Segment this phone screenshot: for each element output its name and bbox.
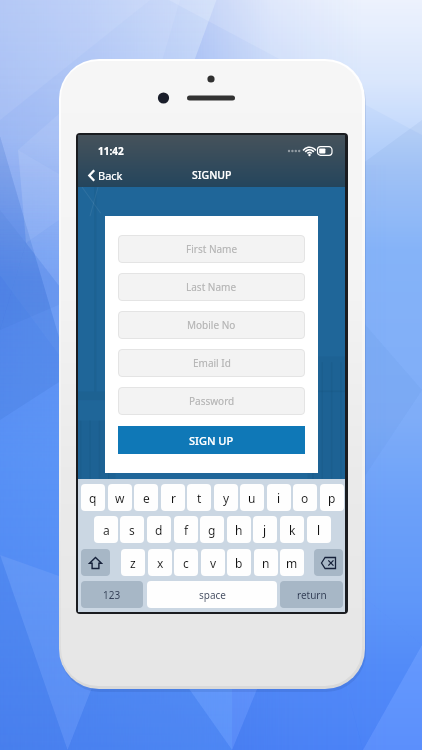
staticText: Back bbox=[98, 168, 123, 183]
button[interactable]: y bbox=[214, 484, 238, 511]
button[interactable]: j bbox=[253, 516, 277, 543]
button[interactable]: k bbox=[280, 516, 304, 543]
button[interactable]: r bbox=[161, 484, 185, 511]
button[interactable]: SIGN UP bbox=[118, 426, 305, 454]
staticText: v bbox=[210, 555, 217, 571]
staticText: r bbox=[171, 490, 176, 506]
button[interactable]: o bbox=[293, 484, 317, 511]
staticText: q bbox=[89, 490, 97, 506]
button[interactable]: Backspace bbox=[314, 549, 343, 576]
button[interactable]: w bbox=[108, 484, 132, 511]
staticText: p bbox=[328, 490, 336, 506]
staticText: Last Name bbox=[186, 280, 237, 294]
button[interactable]: Password bbox=[118, 387, 305, 415]
staticText: Mobile No bbox=[187, 318, 236, 332]
staticText: g bbox=[208, 522, 216, 538]
staticText: t bbox=[197, 490, 202, 506]
staticText: s bbox=[129, 522, 135, 538]
staticText: k bbox=[289, 522, 296, 538]
button[interactable]: t bbox=[187, 484, 211, 511]
staticText: f bbox=[184, 522, 189, 538]
staticText: m bbox=[286, 555, 298, 571]
button[interactable]: b bbox=[227, 549, 251, 576]
staticText: y bbox=[223, 490, 230, 506]
button[interactable]: v bbox=[201, 549, 225, 576]
button[interactable]: Last Name bbox=[118, 273, 305, 301]
button[interactable]: l bbox=[307, 516, 331, 543]
button[interactable]: x bbox=[148, 549, 172, 576]
button[interactable]: d bbox=[147, 516, 171, 543]
staticText: u bbox=[248, 490, 256, 506]
button[interactable]: return bbox=[280, 581, 343, 608]
button[interactable]: g bbox=[200, 516, 224, 543]
staticText: i bbox=[277, 490, 281, 506]
button[interactable]: Back bbox=[84, 163, 127, 187]
staticText: First Name bbox=[186, 242, 238, 256]
staticText: e bbox=[143, 490, 150, 506]
button[interactable]: First Name bbox=[118, 235, 305, 263]
button[interactable]: q bbox=[81, 484, 105, 511]
button[interactable]: c bbox=[174, 549, 198, 576]
staticText: d bbox=[155, 522, 163, 538]
button[interactable]: p bbox=[320, 484, 344, 511]
staticText: Password bbox=[189, 394, 235, 408]
staticText: 11:42 bbox=[98, 144, 124, 158]
staticText: b bbox=[235, 555, 243, 571]
button[interactable]: z bbox=[121, 549, 145, 576]
button[interactable]: space bbox=[147, 581, 277, 608]
staticText: SIGN UP bbox=[189, 433, 234, 448]
button[interactable]: Email Id bbox=[118, 349, 305, 377]
staticText: z bbox=[130, 555, 136, 571]
button[interactable]: u bbox=[240, 484, 264, 511]
staticText: h bbox=[235, 522, 243, 538]
staticText: w bbox=[115, 490, 125, 506]
staticText: space bbox=[199, 588, 226, 602]
button[interactable]: Mobile No bbox=[118, 311, 305, 339]
staticText: SIGNUP bbox=[192, 168, 232, 182]
staticText: c bbox=[183, 555, 189, 571]
staticText: n bbox=[262, 555, 270, 571]
staticText: Email Id bbox=[193, 356, 231, 370]
button[interactable]: a bbox=[94, 516, 118, 543]
staticText: 123 bbox=[103, 588, 121, 602]
button[interactable]: m bbox=[280, 549, 304, 576]
button[interactable]: 123 bbox=[81, 581, 143, 608]
staticText: o bbox=[301, 490, 309, 506]
button[interactable]: h bbox=[227, 516, 251, 543]
staticText: return bbox=[297, 588, 327, 602]
button[interactable]: s bbox=[120, 516, 144, 543]
button[interactable]: n bbox=[254, 549, 278, 576]
button[interactable]: e bbox=[134, 484, 158, 511]
staticText: j bbox=[263, 522, 267, 538]
button[interactable]: f bbox=[174, 516, 198, 543]
staticText: x bbox=[157, 555, 164, 571]
staticText: a bbox=[103, 522, 110, 538]
button[interactable]: i bbox=[267, 484, 291, 511]
staticText: l bbox=[317, 522, 321, 538]
button[interactable]: Shift bbox=[81, 549, 110, 576]
